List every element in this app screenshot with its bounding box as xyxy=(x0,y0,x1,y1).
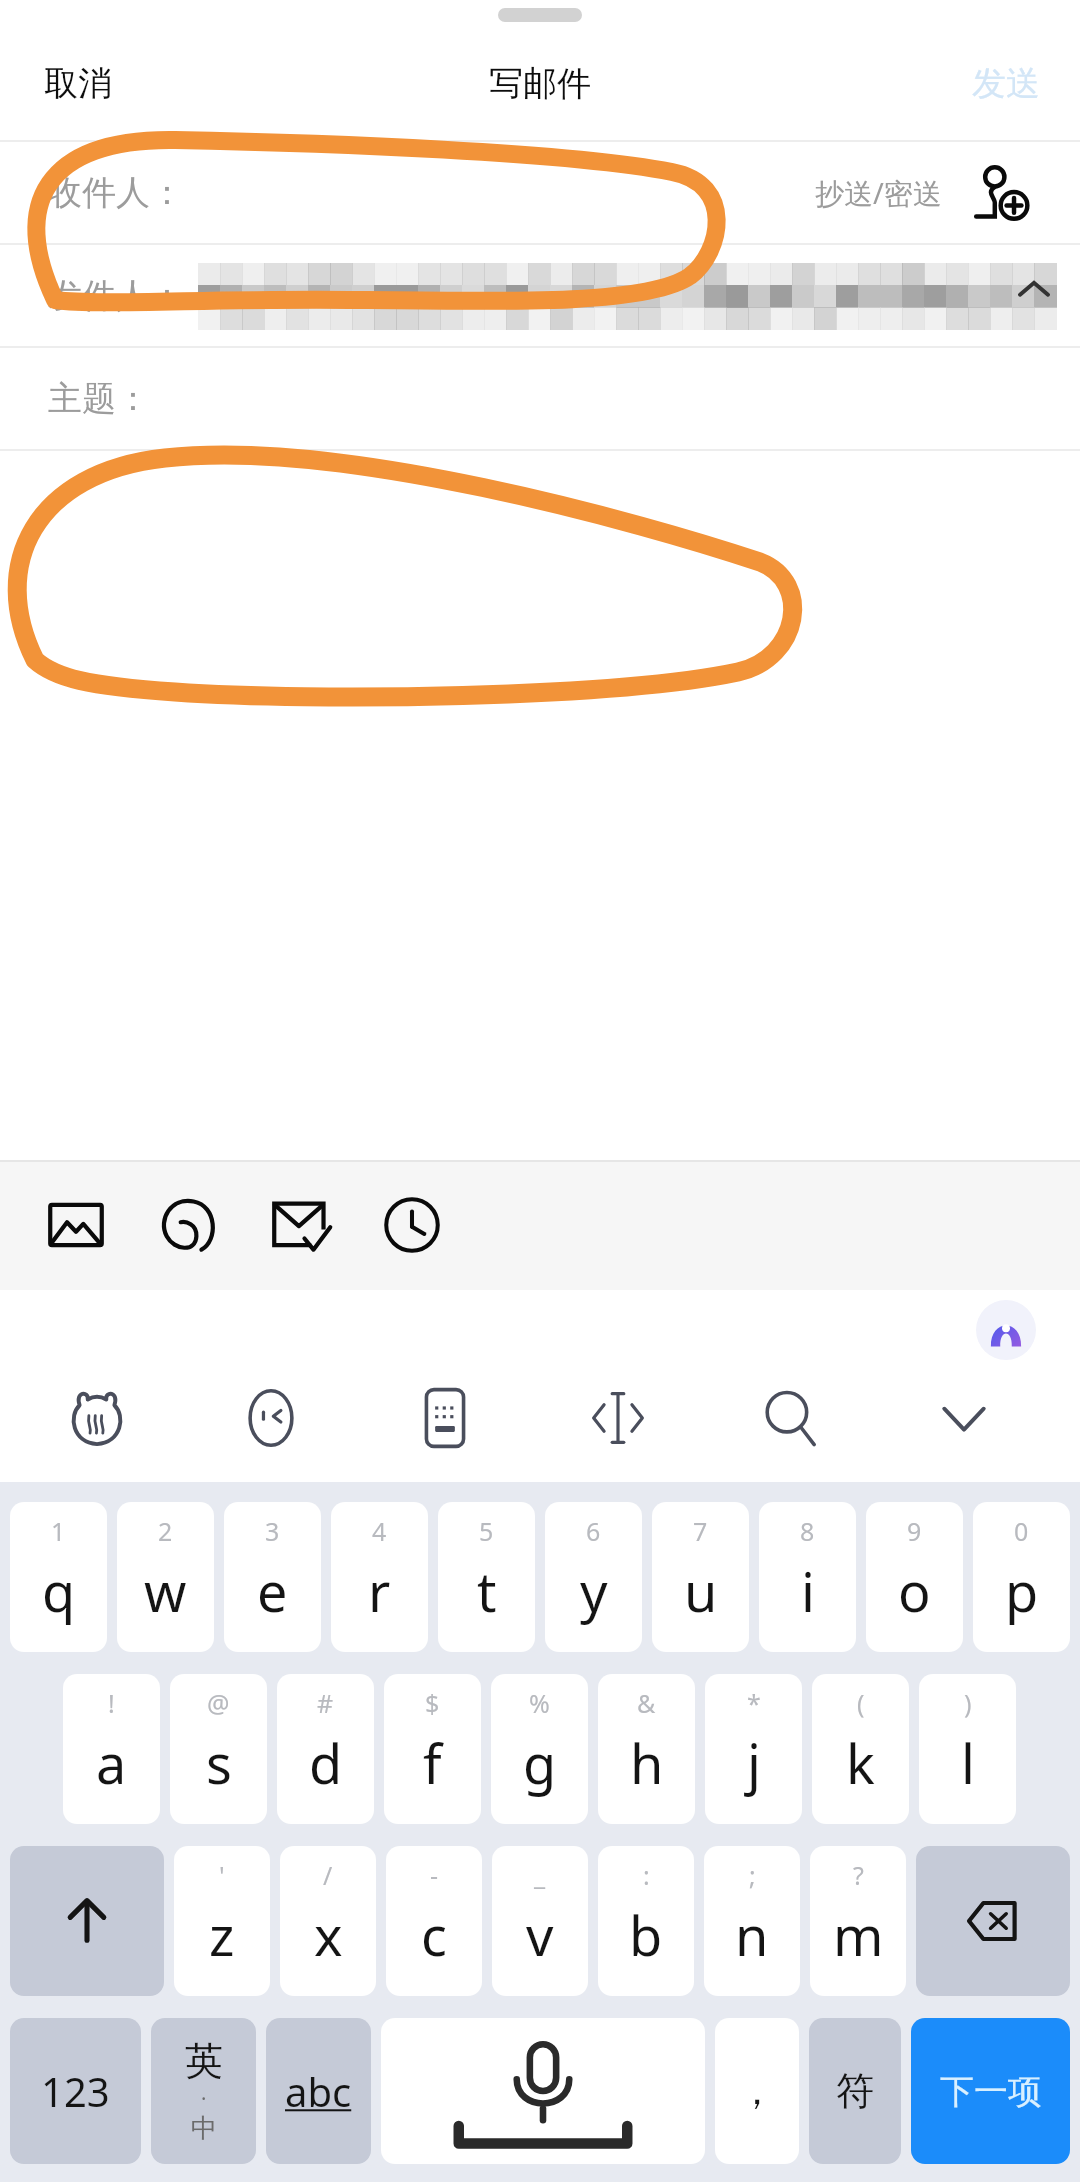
button[interactable]: 0 xyxy=(973,1502,1070,1652)
button[interactable]: / xyxy=(280,1846,376,1996)
button[interactable]: : xyxy=(598,1846,694,1996)
staticText: 3 xyxy=(265,1514,280,1548)
staticText: # xyxy=(317,1686,334,1720)
button[interactable]: # xyxy=(277,1674,374,1824)
staticText: q xyxy=(42,1554,76,1628)
staticText: x xyxy=(314,1898,343,1972)
button[interactable]: ， xyxy=(715,2018,799,2164)
staticText: 写邮件 xyxy=(489,62,591,105)
button[interactable]: Read receipt xyxy=(244,1160,356,1290)
button[interactable]: _ xyxy=(492,1846,588,1996)
button[interactable]: ? xyxy=(810,1846,906,1996)
button[interactable]: Undo xyxy=(132,1160,244,1290)
staticText: d xyxy=(309,1726,343,1800)
staticText: - xyxy=(430,1858,439,1892)
staticText: · xyxy=(201,2085,207,2112)
button[interactable]: Search xyxy=(704,1354,877,1482)
button[interactable]: ' xyxy=(174,1846,270,1996)
staticText: 2 xyxy=(158,1514,173,1548)
button[interactable]: @ xyxy=(170,1674,267,1824)
staticText: o xyxy=(898,1554,931,1628)
button[interactable]: Input method xyxy=(10,1354,184,1482)
staticText: j xyxy=(747,1726,761,1800)
staticText: y xyxy=(580,1554,608,1628)
button[interactable]: ( xyxy=(812,1674,909,1824)
button[interactable]: * xyxy=(705,1674,802,1824)
staticText: 发送 xyxy=(972,62,1040,105)
staticText: % xyxy=(529,1686,550,1720)
staticText: 7 xyxy=(693,1514,708,1548)
button[interactable]: 发送 xyxy=(932,50,1080,117)
staticText: abc xyxy=(285,2064,352,2118)
staticText: z xyxy=(209,1898,235,1972)
button[interactable]: 3 xyxy=(224,1502,321,1652)
button[interactable]: 7 xyxy=(652,1502,749,1652)
button[interactable]: ) xyxy=(919,1674,1016,1824)
button[interactable]: Hide keyboard xyxy=(877,1354,1050,1482)
staticText: r xyxy=(368,1554,391,1628)
button[interactable]: % xyxy=(491,1674,588,1824)
staticText: ， xyxy=(738,2067,776,2115)
staticText: _ xyxy=(534,1858,546,1892)
button[interactable]: Add contact xyxy=(970,162,1032,224)
staticText: 6 xyxy=(586,1514,601,1548)
staticText: 英 xyxy=(185,2037,223,2085)
staticText: 抄送/密送 xyxy=(815,173,942,213)
button[interactable]: 符 xyxy=(809,2018,901,2164)
button[interactable]: Space xyxy=(381,2018,705,2164)
button[interactable]: abc xyxy=(266,2018,371,2164)
staticText: 9 xyxy=(907,1514,922,1548)
staticText: 中 xyxy=(191,2112,217,2145)
button[interactable]: Insert image xyxy=(20,1160,132,1290)
button[interactable]: 9 xyxy=(866,1502,963,1652)
staticText: 4 xyxy=(372,1514,387,1548)
button[interactable]: 发件人： xyxy=(0,245,1080,346)
button[interactable]: 6 xyxy=(545,1502,642,1652)
staticText: h xyxy=(630,1726,664,1800)
staticText: t xyxy=(477,1554,497,1628)
staticText: g xyxy=(523,1726,557,1800)
button[interactable]: 取消 xyxy=(0,50,156,117)
button[interactable]: - xyxy=(386,1846,482,1996)
staticText: 主题： xyxy=(48,377,150,420)
staticText: 8 xyxy=(800,1514,815,1548)
button[interactable]: 2 xyxy=(117,1502,214,1652)
button[interactable]: 4 xyxy=(331,1502,428,1652)
button[interactable]: 8 xyxy=(759,1502,856,1652)
staticText: u xyxy=(684,1554,718,1628)
staticText: b xyxy=(629,1898,663,1972)
button[interactable]: 5 xyxy=(438,1502,535,1652)
button[interactable]: 1 xyxy=(10,1502,107,1652)
button[interactable]: Schedule send xyxy=(356,1160,468,1290)
button[interactable]: 收件人： xyxy=(0,142,1080,243)
staticText: f xyxy=(423,1726,442,1800)
button[interactable]: & xyxy=(598,1674,695,1824)
button[interactable]: Emoji xyxy=(184,1354,358,1482)
staticText: 下一项 xyxy=(940,2070,1042,2113)
button[interactable]: 英 xyxy=(151,2018,256,2164)
staticText: m xyxy=(833,1898,884,1972)
button[interactable]: 下一项 xyxy=(911,2018,1070,2164)
button[interactable]: $ xyxy=(384,1674,481,1824)
button[interactable]: Keyboard layout xyxy=(358,1354,531,1482)
staticText: s xyxy=(206,1726,232,1800)
staticText: 1 xyxy=(51,1514,66,1548)
staticText: ? xyxy=(853,1858,864,1892)
staticText: & xyxy=(637,1686,656,1720)
staticText: n xyxy=(735,1898,769,1972)
staticText: @ xyxy=(207,1686,230,1720)
button[interactable]: Backspace xyxy=(916,1846,1070,1996)
button[interactable]: 123 xyxy=(10,2018,141,2164)
staticText: w xyxy=(144,1554,187,1628)
button[interactable]: AI assistant xyxy=(976,1300,1036,1360)
button[interactable]: Shift xyxy=(10,1846,164,1996)
button[interactable]: ; xyxy=(704,1846,800,1996)
staticText: 发件人： xyxy=(48,274,184,317)
staticText: 取消 xyxy=(44,62,112,105)
staticText: ) xyxy=(964,1686,972,1720)
button[interactable]: 主题： xyxy=(0,348,1080,449)
staticText: c xyxy=(421,1898,447,1972)
button[interactable]: ! xyxy=(63,1674,160,1824)
button[interactable]: Move cursor xyxy=(531,1354,704,1482)
staticText: a xyxy=(96,1726,127,1800)
